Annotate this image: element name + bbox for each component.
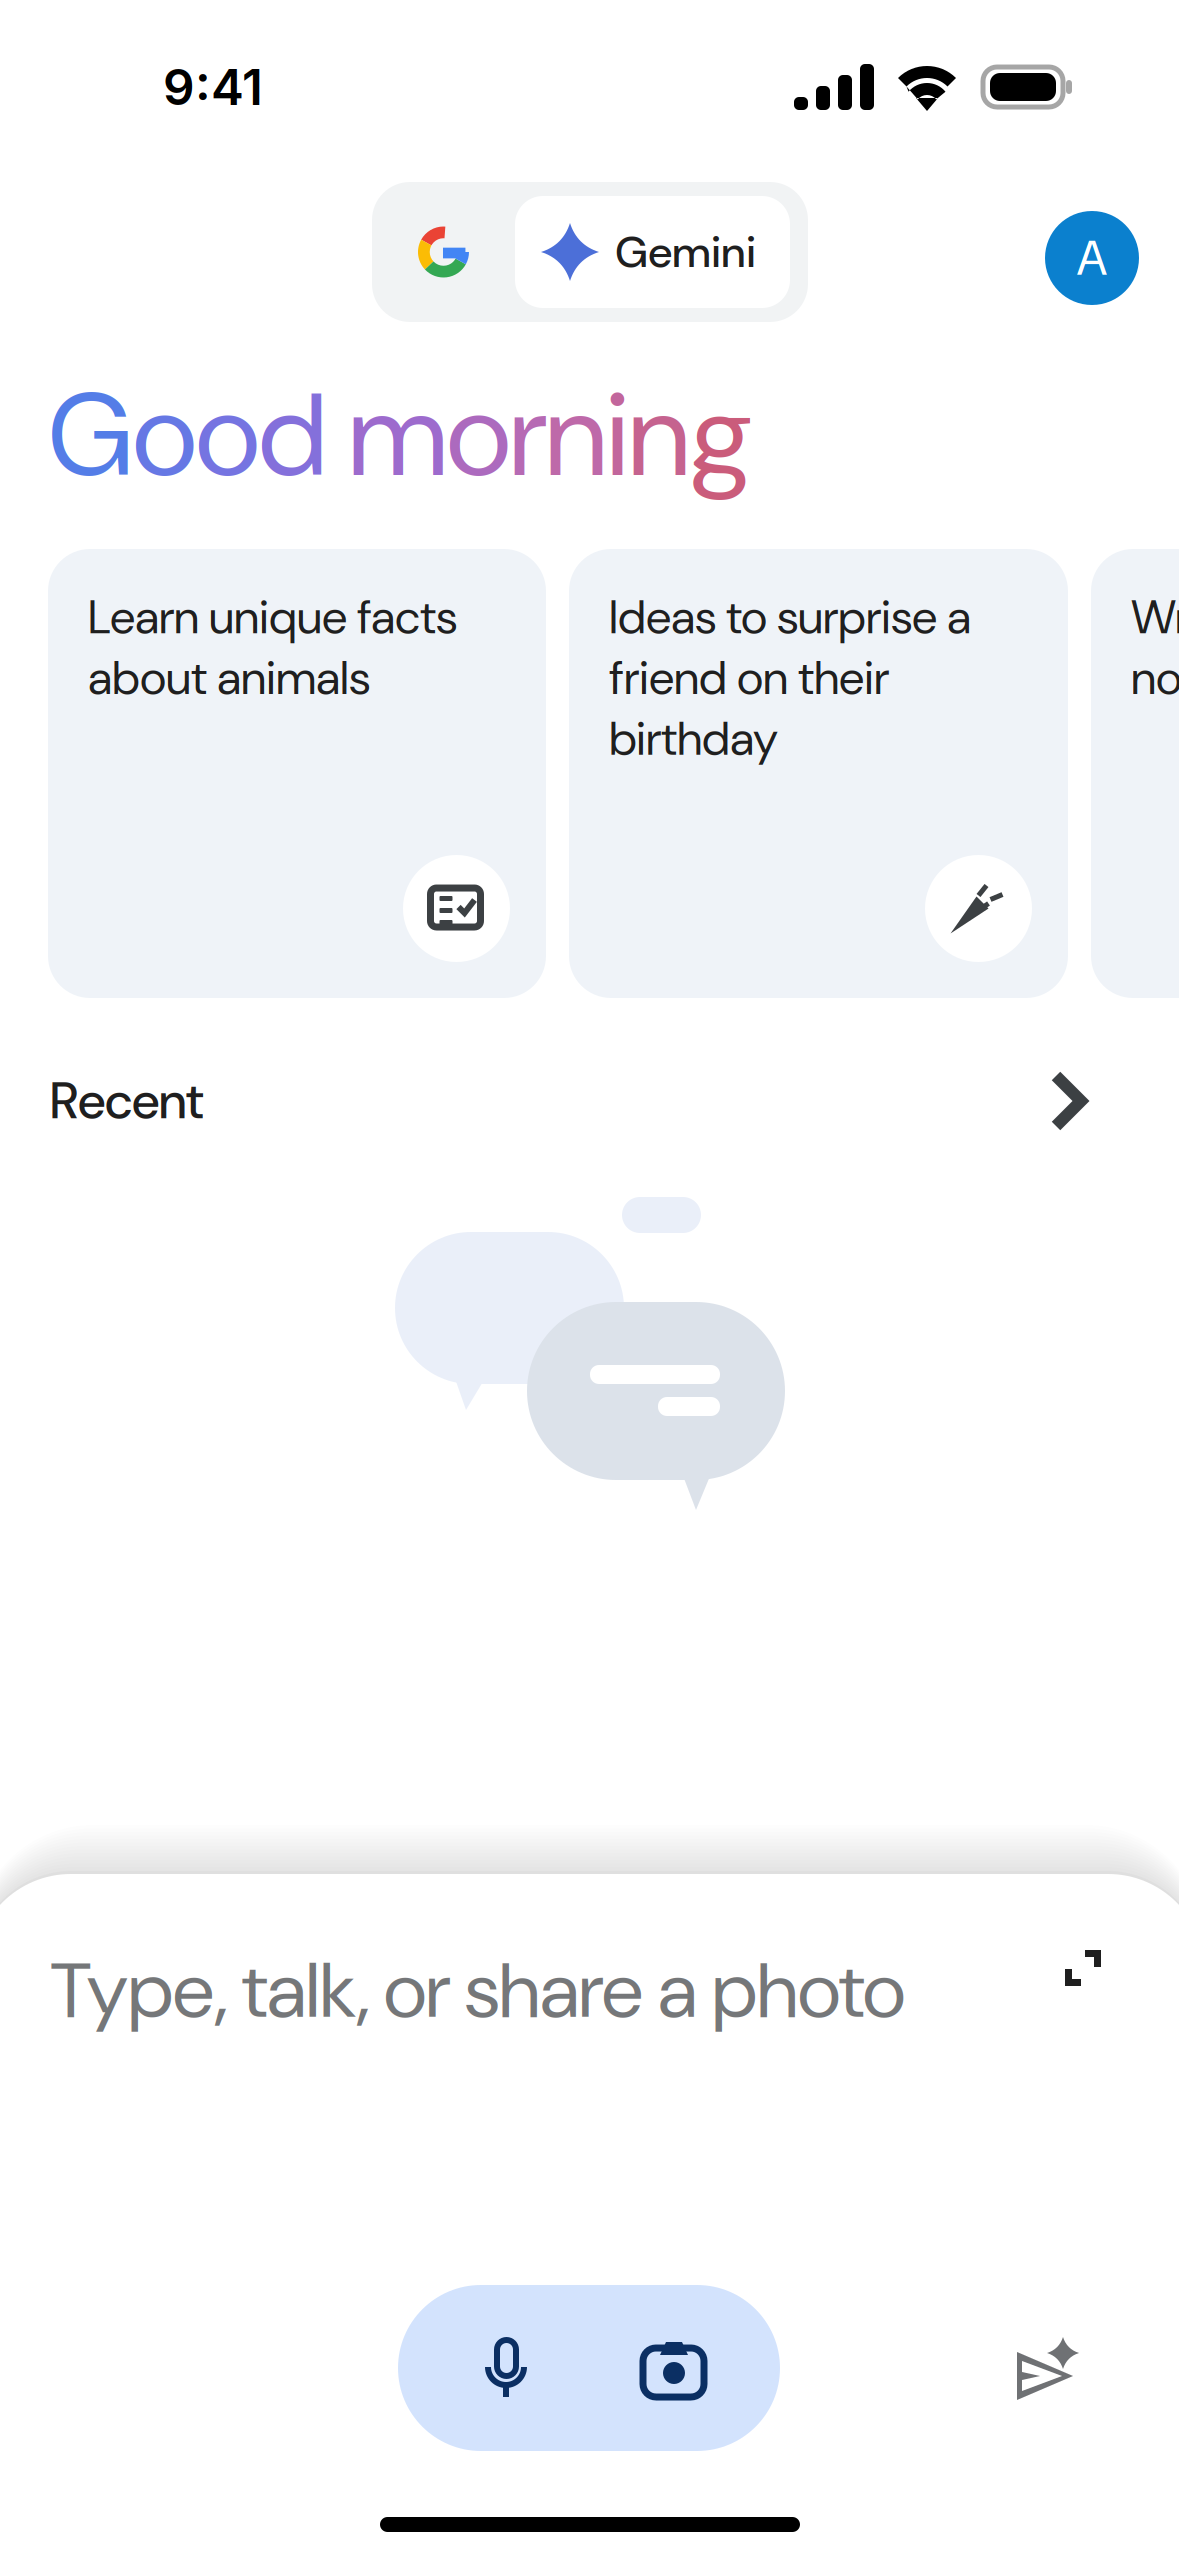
button[interactable]: Account bbox=[1045, 211, 1139, 305]
button[interactable]: Recent bbox=[0, 1050, 1179, 1150]
button[interactable]: Learn unique facts about animals bbox=[48, 549, 546, 998]
staticText: 9:41 bbox=[163, 57, 263, 117]
staticText: G bbox=[48, 360, 133, 511]
staticText: Recent bbox=[50, 1068, 203, 1134]
staticText: r bbox=[510, 360, 546, 511]
staticText: m bbox=[349, 360, 447, 511]
staticText: Write a thank you note bbox=[1131, 587, 1179, 708]
staticText: Type, talk, or share a photo bbox=[51, 1940, 905, 2041]
staticText: A bbox=[1076, 226, 1107, 290]
button[interactable]: Voice input bbox=[485, 2340, 527, 2397]
staticText: i bbox=[606, 360, 629, 511]
staticText: o bbox=[133, 360, 196, 511]
staticText: g bbox=[689, 360, 753, 511]
staticText: Gemini bbox=[615, 223, 756, 281]
button[interactable]: Camera bbox=[643, 2342, 704, 2397]
staticText: o bbox=[447, 360, 510, 511]
button[interactable]: Write a thank you note bbox=[1091, 549, 1179, 998]
button[interactable]: Ideas to surprise a friend on their birt… bbox=[569, 549, 1068, 998]
staticText: n bbox=[546, 360, 606, 511]
staticText: n bbox=[629, 360, 689, 511]
staticText: Ideas to surprise a friend on their birt… bbox=[609, 587, 971, 769]
staticText: d bbox=[259, 360, 326, 511]
staticText: Learn unique facts about animals bbox=[88, 587, 457, 708]
button[interactable]: Gemini bbox=[372, 182, 808, 322]
staticText: o bbox=[196, 360, 259, 511]
button[interactable]: Expand bbox=[1065, 1950, 1101, 1986]
button[interactable]: Type, talk, or share a photo bbox=[51, 1940, 905, 2041]
button[interactable]: Send bbox=[1017, 2337, 1079, 2400]
